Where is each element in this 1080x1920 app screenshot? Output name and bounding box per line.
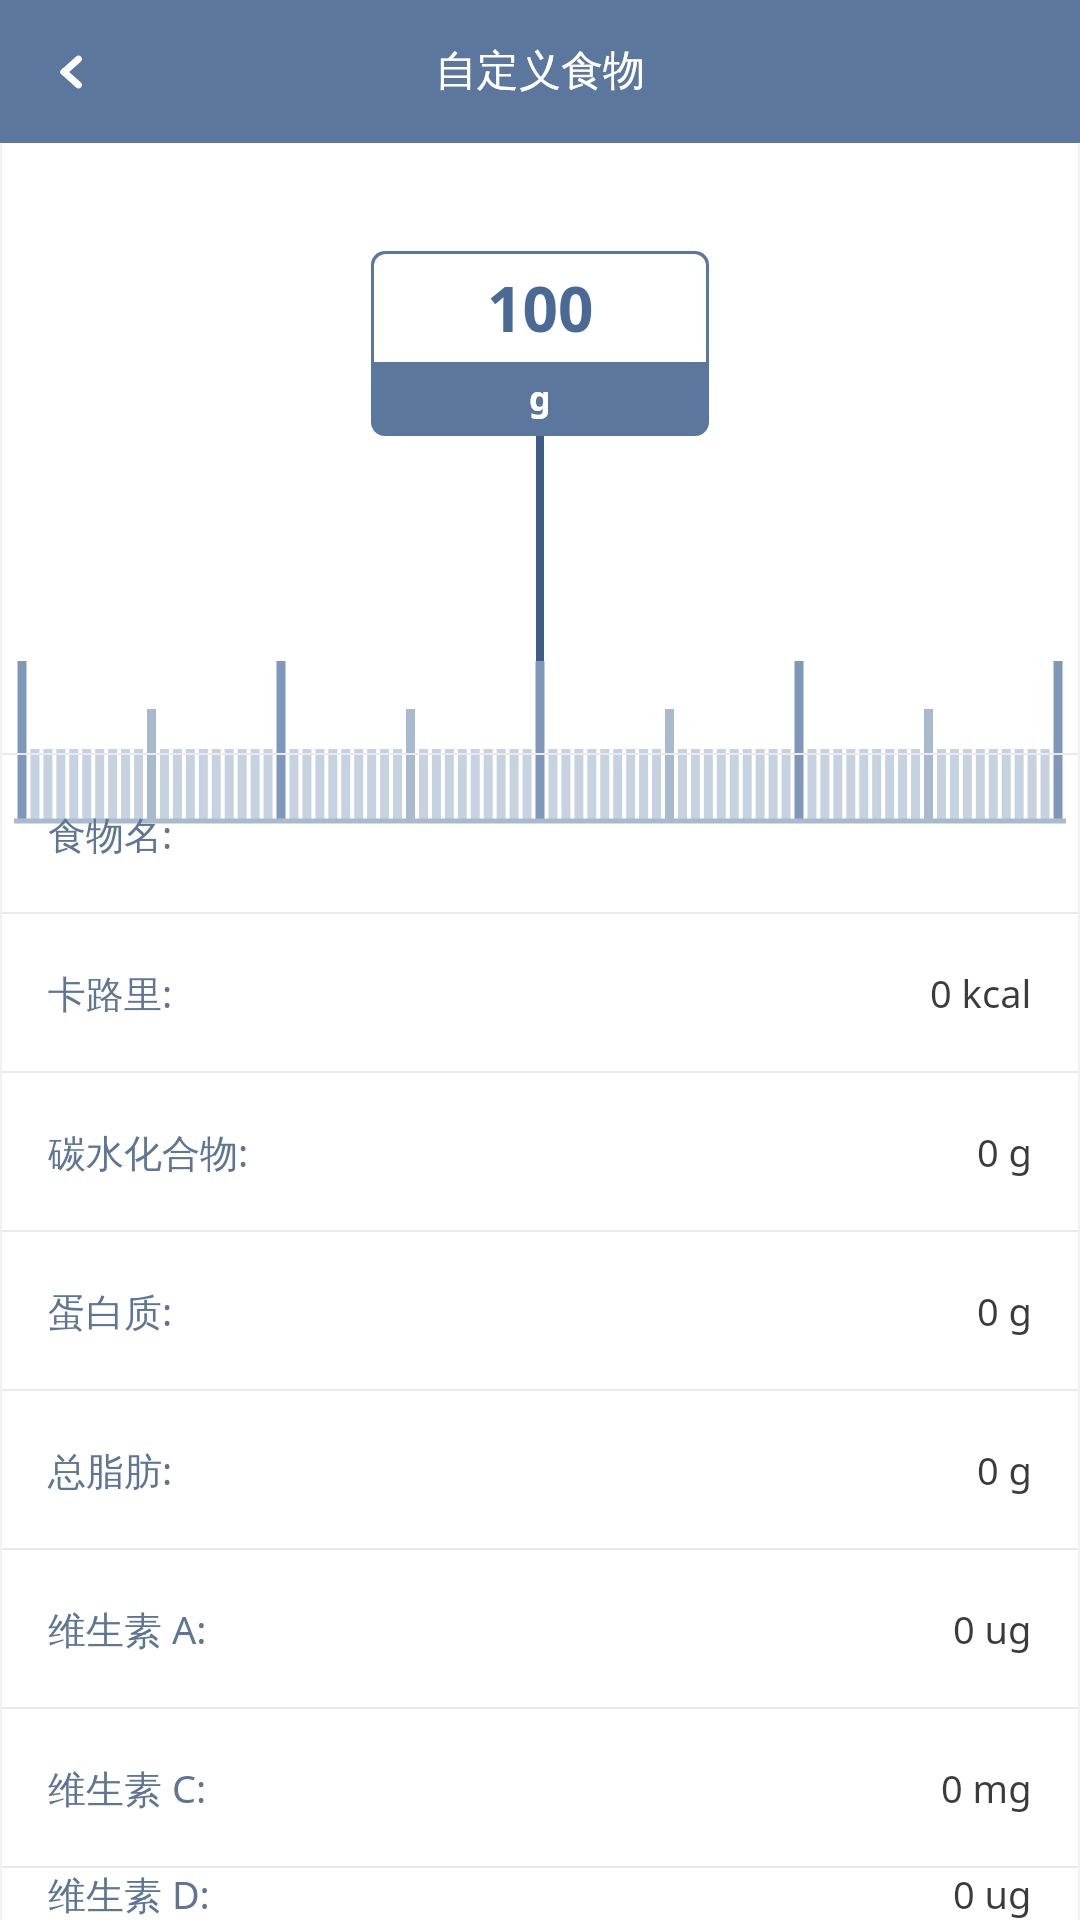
staticText: 蛋白质: (48, 1285, 173, 1337)
staticText: 维生素 A: (48, 1603, 207, 1655)
button[interactable]: 100 (374, 254, 706, 433)
button[interactable]: Back (24, 24, 120, 120)
button[interactable]: 维生素 A: (2, 1550, 1078, 1707)
button[interactable]: 卡路里: (2, 914, 1078, 1071)
staticText: 0 kcal (930, 967, 1032, 1019)
button[interactable]: 维生素 C: (2, 1709, 1078, 1866)
staticText: 0 g (977, 1444, 1032, 1496)
button[interactable]: 碳水化合物: (2, 1073, 1078, 1230)
staticText: 0 mg (941, 1762, 1032, 1814)
button[interactable]: 蛋白质: (2, 1232, 1078, 1389)
staticText: 100 (487, 266, 594, 350)
staticText: 总脂肪: (48, 1444, 173, 1496)
staticText: 0 g (977, 1285, 1032, 1337)
staticText: 自定义食物 (435, 45, 645, 98)
staticText: g (529, 375, 551, 421)
staticText: 碳水化合物: (48, 1126, 249, 1178)
button[interactable]: 总脂肪: (2, 1391, 1078, 1548)
staticText: 维生素 C: (48, 1762, 207, 1814)
button[interactable]: 维生素 D: (2, 1868, 1078, 1920)
staticText: 0 ug (953, 1603, 1032, 1655)
staticText: 0 g (977, 1126, 1032, 1178)
staticText: 0 ug (953, 1868, 1032, 1920)
button[interactable]: 食物名: (2, 755, 1078, 912)
staticText: 食物名: (48, 808, 173, 860)
staticText: 卡路里: (48, 967, 173, 1019)
staticText: 维生素 D: (48, 1868, 210, 1920)
